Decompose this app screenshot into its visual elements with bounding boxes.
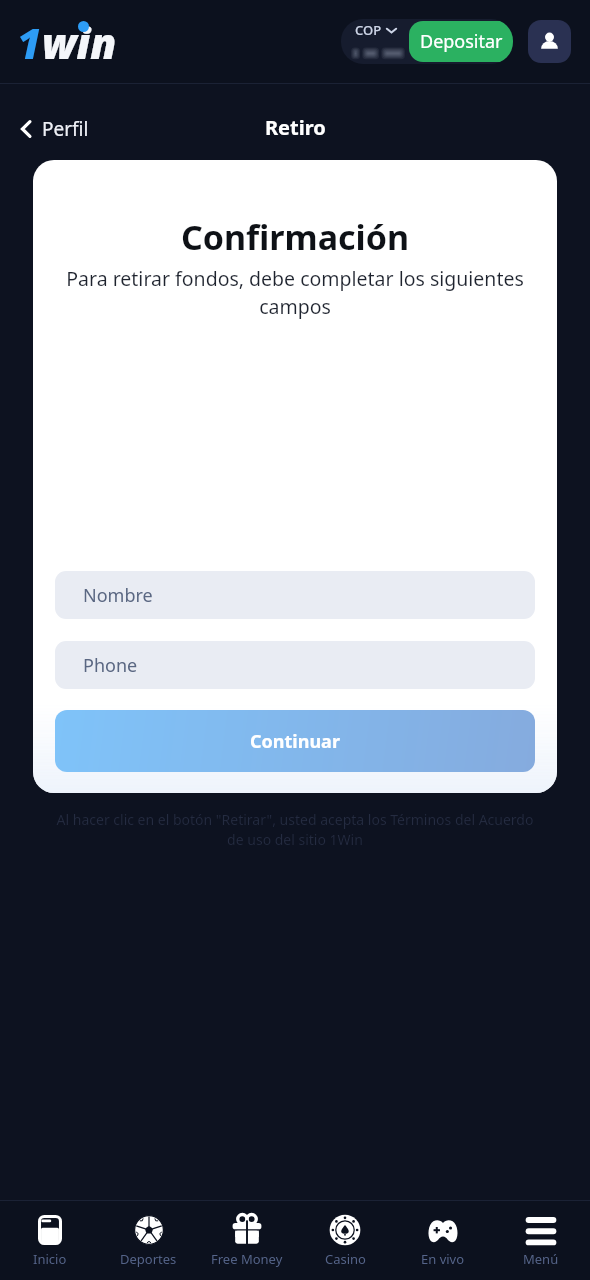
staticText: Menú xyxy=(523,1250,559,1268)
button[interactable]: COP xyxy=(341,19,411,64)
staticText: win xyxy=(42,14,117,68)
button[interactable]: Phone xyxy=(55,641,535,689)
button[interactable]: Inicio xyxy=(0,1214,99,1268)
button[interactable]: Perfil xyxy=(528,20,571,63)
staticText: Confirmación xyxy=(33,214,557,260)
staticText: Depositar xyxy=(420,29,503,54)
staticText: 1 xyxy=(17,14,42,68)
button[interactable]: Free Money xyxy=(198,1214,296,1268)
button[interactable]: Depositar xyxy=(409,21,513,62)
button[interactable]: Menú xyxy=(492,1214,590,1268)
staticText: Perfil xyxy=(42,116,89,142)
staticText: Nombre xyxy=(83,583,153,608)
staticText: Para retirar fondos, debe completar los … xyxy=(47,265,543,320)
button[interactable]: 1win xyxy=(16,14,118,68)
staticText: Continuar xyxy=(250,729,340,754)
staticText: Al hacer clic en el botón "Retirar", ust… xyxy=(53,810,537,850)
button[interactable]: Deportes xyxy=(99,1214,198,1268)
staticText: COP xyxy=(355,21,382,39)
staticText: Inicio xyxy=(33,1250,67,1268)
staticText: Phone xyxy=(83,653,138,678)
button[interactable]: Nombre xyxy=(55,571,535,619)
button[interactable]: En vivo xyxy=(394,1214,492,1268)
staticText: Casino xyxy=(325,1250,366,1268)
button[interactable]: Perfil xyxy=(17,116,89,142)
staticText: Free Money xyxy=(211,1250,283,1268)
button[interactable]: Continuar xyxy=(55,710,535,772)
button[interactable]: Casino xyxy=(296,1214,394,1268)
staticText: Retiro xyxy=(265,114,326,141)
staticText: Deportes xyxy=(120,1250,177,1268)
staticText: En vivo xyxy=(421,1250,465,1268)
